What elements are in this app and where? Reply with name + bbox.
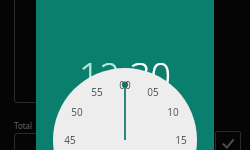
button[interactable]: 00 <box>115 75 135 95</box>
button[interactable]: Minute dial <box>53 68 197 150</box>
staticText: : <box>121 51 130 100</box>
button[interactable]: 55 <box>87 82 107 102</box>
button[interactable]: 12 <box>79 51 121 100</box>
staticText: 15 <box>175 133 187 147</box>
staticText: 55 <box>91 85 103 99</box>
button[interactable]: 30 <box>130 51 172 100</box>
staticText: 45 <box>64 133 76 147</box>
button[interactable]: 15 <box>171 130 191 150</box>
staticText: 10 <box>167 105 179 119</box>
staticText: Total <box>14 120 33 131</box>
staticText: 50 <box>71 105 83 119</box>
button[interactable]: 50 <box>67 102 87 122</box>
button[interactable]: 05 <box>143 82 163 102</box>
button[interactable]: 45 <box>60 130 80 150</box>
button[interactable]: Confirm <box>215 131 241 150</box>
staticText: 05 <box>147 85 159 99</box>
staticText: 00 <box>119 78 131 92</box>
button[interactable]: 10 <box>163 102 183 122</box>
